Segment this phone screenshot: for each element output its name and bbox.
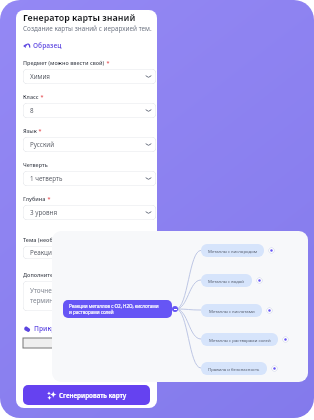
staticText: Реакции металлов xyxy=(30,248,87,257)
staticText: Язык xyxy=(23,127,37,134)
staticText: 1 четверть xyxy=(30,174,63,183)
staticText: Металлы с кислородом xyxy=(208,248,257,254)
staticText: Предмет (можно ввести свой) xyxy=(23,59,105,66)
button[interactable]: Реакции металлов с O2, H2O, кислотами и … xyxy=(63,300,172,318)
button[interactable]: 8 xyxy=(23,103,156,118)
staticText: Уточнения: только школьная терминология xyxy=(30,286,121,305)
staticText: Правила и безопасность xyxy=(208,366,260,372)
staticText: Химия xyxy=(30,72,50,81)
staticText: Четверть xyxy=(23,161,48,168)
button[interactable]: Металлы с кислородом xyxy=(201,244,264,257)
staticText: Тема (необязательно) xyxy=(23,236,83,243)
button[interactable]: Expand Металлы с водой xyxy=(256,277,263,284)
staticText: * xyxy=(37,127,42,134)
button[interactable]: Реакции металлов xyxy=(23,246,156,259)
staticText: Класс xyxy=(23,93,39,100)
button[interactable]: 1 четверть xyxy=(23,171,156,186)
staticText: Металлы с водой xyxy=(208,278,245,284)
button[interactable]: Русский xyxy=(23,137,156,152)
staticText: * xyxy=(39,93,44,100)
staticText: * xyxy=(105,59,110,66)
staticText: Дополнительно xyxy=(23,271,67,278)
staticText: 8 xyxy=(30,106,34,115)
button[interactable]: Металлы с растворами солей xyxy=(201,333,278,346)
staticText: Реакции металлов с O2, H2O, кислотами и … xyxy=(69,303,159,315)
staticText: Прикрепить файлы xyxy=(34,324,100,333)
button[interactable]: Металлы с кислотами xyxy=(201,304,262,317)
staticText: 3 уровня xyxy=(30,208,58,217)
staticText: Русский xyxy=(30,140,55,149)
button[interactable]: Металлы с водой xyxy=(201,274,252,287)
button[interactable]: Прикрепить файлы xyxy=(23,324,100,333)
button[interactable]: Сгенерировать карту xyxy=(23,385,150,405)
button[interactable]: 3 уровня xyxy=(23,205,156,220)
staticText: * xyxy=(46,195,51,202)
button[interactable]: Образец xyxy=(23,41,62,50)
staticText: Сгенерировать карту xyxy=(59,391,127,400)
button[interactable]: Collapse node xyxy=(172,306,178,312)
button[interactable]: Уточнения: только школьная терминология xyxy=(23,281,156,311)
button[interactable]: Expand Правила и безопасность xyxy=(271,365,278,372)
staticText: Металлы с растворами солей xyxy=(209,337,271,343)
staticText: Металлы с кислотами xyxy=(209,308,255,314)
button[interactable]: Expand Металлы с кислотами xyxy=(266,307,273,314)
button[interactable]: Химия xyxy=(23,69,156,84)
button[interactable]: Expand Металлы с кислородом xyxy=(268,247,275,254)
staticText: Образец xyxy=(33,41,62,50)
button[interactable]: Выбрать файлы xyxy=(23,338,157,348)
button[interactable]: Expand Металлы с растворами солей xyxy=(282,336,289,343)
staticText: Генератор карты знаний xyxy=(23,12,136,24)
staticText: Создание карты знаний с иерархией тем. xyxy=(23,24,152,33)
staticText: Глубина xyxy=(23,195,46,202)
button[interactable]: Правила и безопасность xyxy=(201,362,267,375)
